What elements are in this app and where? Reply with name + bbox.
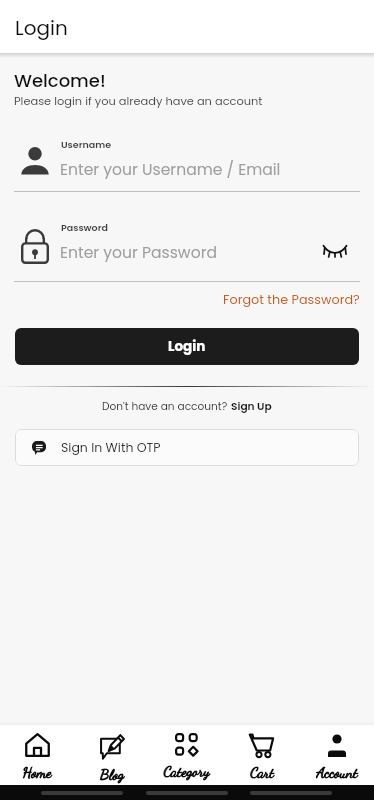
staticText: Forgot the Password? — [223, 291, 360, 309]
staticText: Login — [168, 337, 206, 356]
button[interactable]: Account — [299, 723, 374, 781]
staticText: Cart — [250, 763, 274, 781]
staticText: Category — [163, 762, 210, 780]
staticText: Sign In With OTP — [61, 439, 161, 456]
button[interactable]: Category — [149, 723, 224, 780]
button[interactable]: Login — [15, 328, 359, 365]
staticText: Cart — [250, 763, 274, 781]
staticText: Blog — [100, 765, 124, 783]
staticText: Home — [22, 763, 52, 781]
button[interactable]: Sign Up — [231, 399, 272, 414]
staticText: Enter your Password — [60, 242, 217, 264]
staticText: Category — [163, 762, 210, 780]
button[interactable]: Forgot the Password? — [223, 291, 360, 309]
button[interactable]: Sign In With OTP — [15, 429, 359, 466]
button[interactable]: Show password — [322, 238, 348, 264]
staticText: Welcome! — [14, 68, 106, 93]
staticText: Account — [316, 763, 358, 781]
button[interactable]: Blog — [74, 723, 149, 783]
staticText: Please login if you already have an acco… — [14, 93, 263, 109]
staticText: Enter your Username / Email — [60, 159, 281, 181]
staticText: Login — [15, 14, 68, 42]
staticText: Password — [61, 221, 108, 234]
staticText: Home — [22, 763, 52, 781]
staticText: Username — [61, 138, 112, 151]
staticText: Don't have an account? — [102, 399, 231, 414]
button[interactable]: Home — [0, 723, 74, 781]
staticText: Blog — [100, 765, 124, 783]
staticText: Account — [316, 763, 358, 781]
button[interactable]: Cart — [224, 723, 299, 781]
